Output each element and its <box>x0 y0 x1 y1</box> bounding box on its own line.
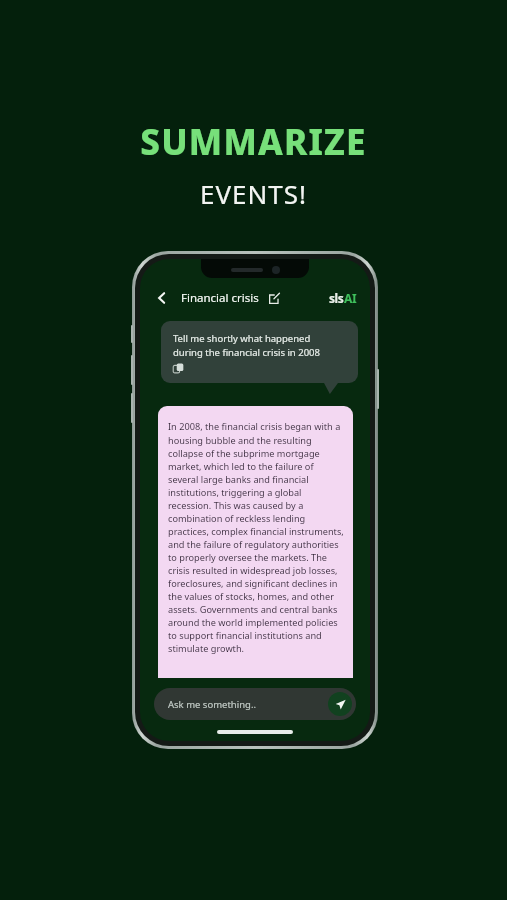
button[interactable]: In 2008, the financial crisis began with… <box>158 406 353 678</box>
staticText: Ask me something.. <box>168 698 256 711</box>
button[interactable]: Copy message <box>173 363 184 374</box>
staticText: EVENTS! <box>200 176 307 211</box>
staticText: SUMMARIZE <box>140 118 367 166</box>
button[interactable]: sls <box>329 290 357 306</box>
staticText: Tell me shortly what happened during the… <box>173 332 320 359</box>
button[interactable]: Back <box>151 287 173 309</box>
button[interactable]: Rename chat <box>266 290 282 306</box>
staticText: In 2008, the financial crisis began with… <box>168 420 345 654</box>
button[interactable]: Send <box>328 692 352 716</box>
button[interactable]: Ask me something.. <box>154 688 356 720</box>
staticText: AI <box>344 290 357 306</box>
button[interactable]: Tell me shortly what happened during the… <box>161 321 358 383</box>
staticText: sls <box>329 290 344 306</box>
button[interactable]: Financial crisis <box>181 290 259 306</box>
